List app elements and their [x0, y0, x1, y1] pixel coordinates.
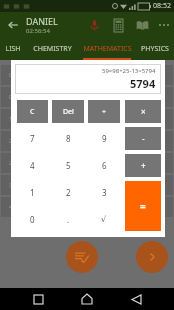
button[interactable]: 40 [100, 175, 123, 195]
button[interactable]: C [17, 100, 48, 123]
button[interactable]: 0 [17, 208, 48, 231]
staticText: 13 [133, 93, 140, 101]
staticText: 9 [102, 133, 107, 144]
button[interactable]: Back [0, 12, 26, 38]
button[interactable]: 35 [150, 153, 173, 173]
staticText: 30 [33, 159, 40, 167]
button[interactable]: 24 [50, 131, 73, 151]
button[interactable]: = [125, 181, 161, 231]
button[interactable]: CHEMISTRY [26, 38, 78, 60]
button[interactable]: 38 [50, 175, 73, 195]
button[interactable]: 29 [1, 153, 23, 173]
button[interactable]: 07 [150, 65, 173, 85]
staticText: + [141, 160, 146, 171]
button[interactable]: 2 [52, 181, 84, 204]
button[interactable]: 17 [50, 109, 73, 129]
button[interactable]: 9 [88, 127, 120, 150]
button[interactable]: 48 [125, 197, 148, 217]
button[interactable]: 11 [75, 87, 98, 107]
button[interactable]: √ [88, 208, 120, 231]
button[interactable]: 20 [125, 109, 148, 129]
button[interactable]: Recents [27, 288, 49, 310]
button[interactable]: 09 [25, 87, 48, 107]
staticText: 0 [30, 214, 35, 225]
button[interactable]: 18 [75, 109, 98, 129]
button[interactable]: Answer sheet [66, 241, 98, 273]
button[interactable]: PHYSICS [136, 38, 174, 60]
button[interactable]: 28 [150, 131, 173, 151]
button[interactable]: . [52, 208, 84, 231]
button[interactable]: + [125, 154, 161, 177]
staticText: 06 [133, 71, 140, 79]
button[interactable]: ÷ [88, 100, 120, 123]
staticText: LISH [5, 44, 21, 54]
staticText: = [140, 199, 146, 213]
button[interactable]: 6 [88, 154, 120, 177]
button[interactable]: 3 [88, 181, 120, 204]
button[interactable]: × [125, 100, 161, 123]
button[interactable]: 15 [1, 109, 23, 129]
button[interactable]: 44 [25, 197, 48, 217]
button[interactable]: MATHEMATICS [78, 38, 136, 60]
staticText: 5794 [130, 76, 156, 91]
button[interactable]: 33 [100, 153, 123, 173]
button[interactable]: 10 [50, 87, 73, 107]
button[interactable]: 23 [25, 131, 48, 151]
staticText: 43 [9, 203, 16, 211]
button[interactable]: 21 [150, 109, 173, 129]
button[interactable]: 4 [17, 154, 48, 177]
button[interactable]: 43 [1, 197, 23, 217]
button[interactable]: - [125, 127, 161, 150]
button[interactable]: 37 [25, 175, 48, 195]
button[interactable]: 27 [125, 131, 148, 151]
button[interactable]: LISH [0, 38, 26, 60]
button[interactable]: 19 [100, 109, 123, 129]
staticText: √ [101, 215, 107, 224]
button[interactable]: 13 [125, 87, 148, 107]
button[interactable]: Microphone [82, 12, 106, 38]
button[interactable]: 08 [1, 87, 23, 107]
staticText: 6 [102, 160, 107, 171]
button[interactable]: Home [76, 288, 98, 310]
button[interactable]: Book [130, 12, 154, 38]
button[interactable]: 01 [1, 65, 23, 85]
button[interactable]: Calculator [106, 12, 130, 38]
button[interactable]: 36 [1, 175, 23, 195]
button[interactable]: Del [52, 100, 84, 123]
button[interactable]: 14 [150, 87, 173, 107]
button[interactable]: 7 [17, 127, 48, 150]
button[interactable]: 34 [125, 153, 148, 173]
button[interactable]: 16 [25, 109, 48, 129]
button[interactable]: 41 [125, 175, 148, 195]
button[interactable]: 30 [25, 153, 48, 173]
button[interactable]: 5 [52, 154, 84, 177]
button[interactable]: 8 [52, 127, 84, 150]
button[interactable]: More options [154, 12, 174, 38]
button[interactable]: Next [136, 241, 168, 273]
button[interactable]: 06 [125, 65, 148, 85]
button[interactable]: 05 [100, 65, 123, 85]
button[interactable]: 12 [100, 87, 123, 107]
button[interactable]: 49 [150, 197, 173, 217]
button[interactable]: 1 [17, 181, 48, 204]
button[interactable]: 42 [150, 175, 173, 195]
button[interactable]: 26 [100, 131, 123, 151]
button[interactable]: 31 [50, 153, 73, 173]
button[interactable]: Back [125, 288, 147, 310]
button[interactable]: 47 [100, 197, 123, 217]
staticText: 59×98+25-13=5794 [102, 67, 156, 75]
button[interactable]: 22 [1, 131, 23, 151]
